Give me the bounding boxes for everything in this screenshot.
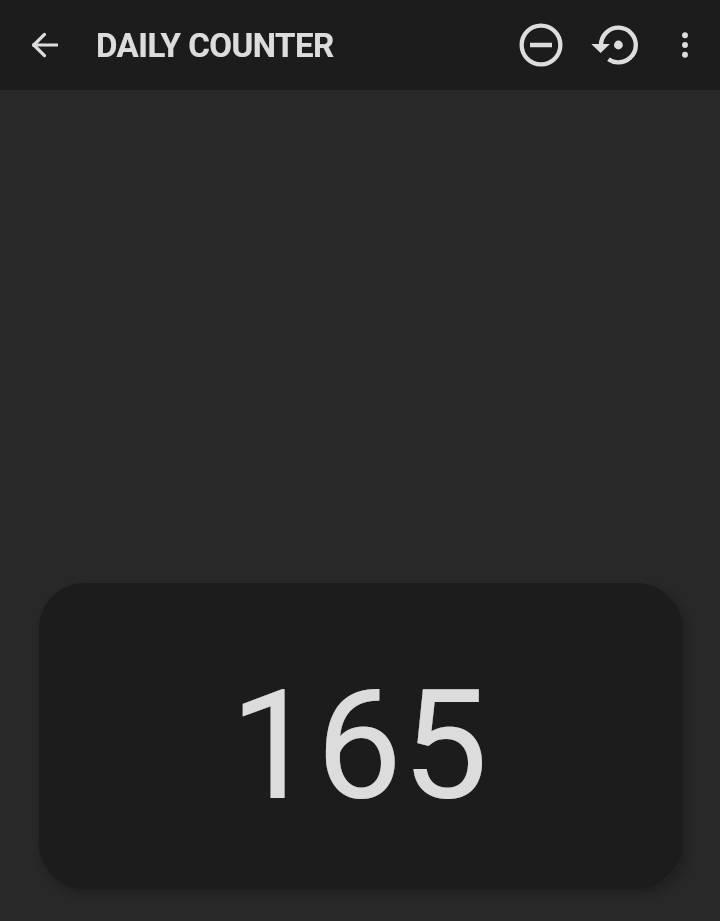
button[interactable]: Decrement bbox=[512, 16, 570, 74]
button[interactable]: More options bbox=[657, 17, 713, 73]
staticText: DAILY COUNTER bbox=[96, 26, 334, 65]
button[interactable]: 165 bbox=[39, 583, 682, 889]
staticText: 165 bbox=[230, 656, 488, 835]
button[interactable]: Back bbox=[17, 17, 73, 73]
button[interactable]: Reset bbox=[589, 16, 647, 74]
